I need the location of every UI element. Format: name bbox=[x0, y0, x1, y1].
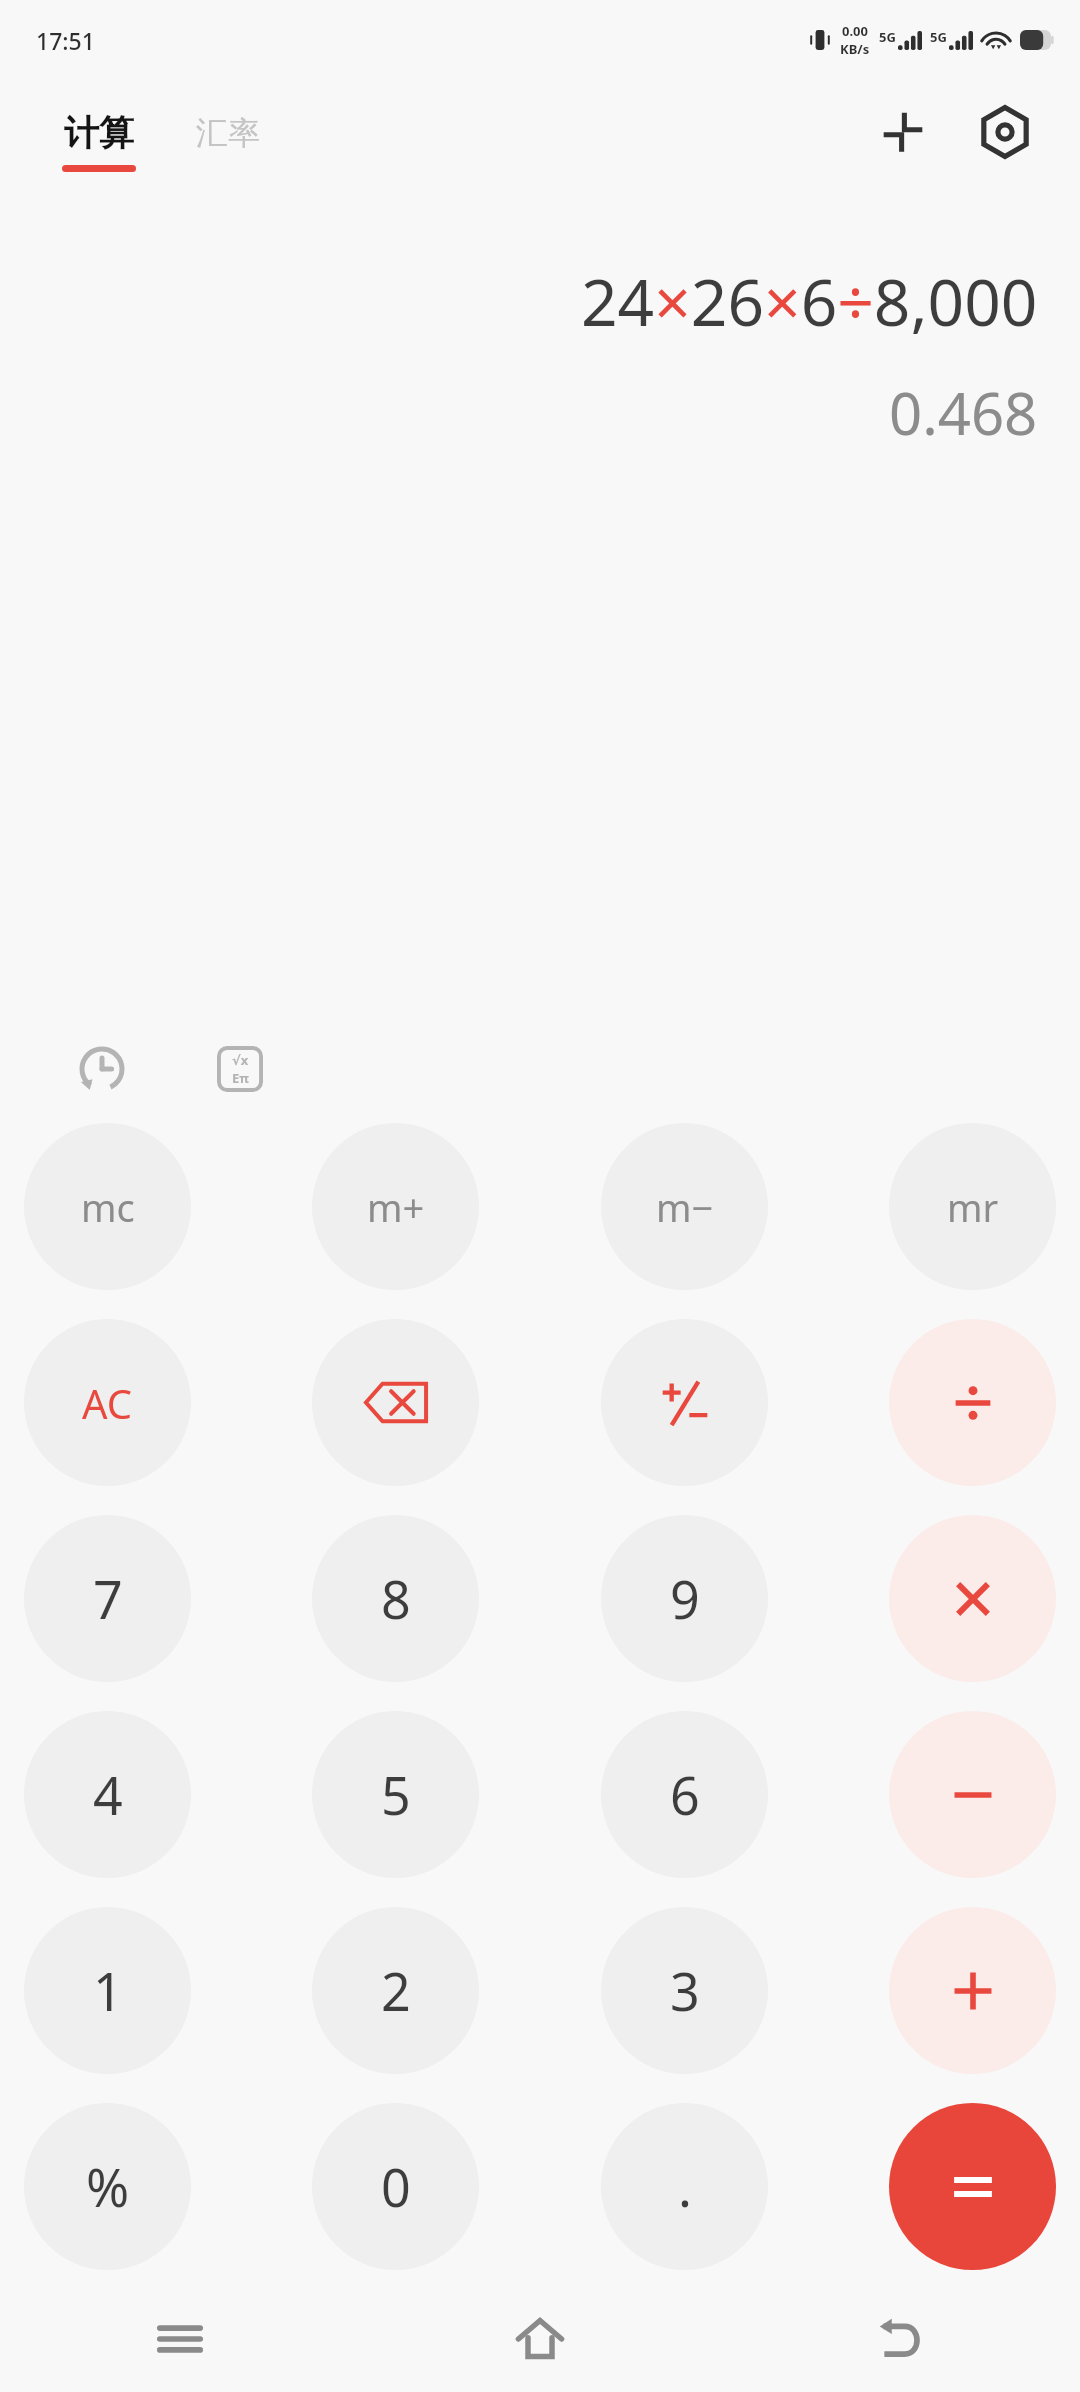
staticText: 汇率 bbox=[196, 113, 260, 153]
staticText: KB/s bbox=[840, 40, 870, 58]
staticText: 计算 bbox=[64, 111, 134, 155]
staticText: Eπ bbox=[232, 1069, 249, 1087]
button[interactable]: 计算 bbox=[62, 111, 136, 172]
button[interactable] bbox=[889, 2103, 1056, 2270]
button[interactable]: 3 bbox=[601, 1907, 768, 2074]
staticText: % bbox=[86, 2151, 130, 2222]
button[interactable]: Recent apps bbox=[0, 2296, 360, 2382]
staticText: 7 bbox=[93, 1563, 123, 1634]
button[interactable]: 8 bbox=[312, 1515, 479, 1682]
button[interactable]: m+ bbox=[312, 1123, 479, 1290]
button[interactable]: 9 bbox=[601, 1515, 768, 1682]
button[interactable]: 6 bbox=[601, 1711, 768, 1878]
button[interactable] bbox=[889, 1515, 1056, 1682]
button[interactable]: History bbox=[70, 1037, 134, 1101]
staticText: m+ bbox=[367, 1181, 425, 1233]
staticText: 0.468 bbox=[889, 373, 1038, 452]
staticText: 9 bbox=[670, 1563, 700, 1634]
button[interactable]: Settings bbox=[972, 99, 1038, 165]
staticText: 4 bbox=[93, 1759, 123, 1830]
button[interactable]: Toggle sign bbox=[601, 1319, 768, 1486]
staticText: √x bbox=[232, 1051, 249, 1069]
staticText: 5G bbox=[930, 28, 947, 46]
button[interactable]: 0 bbox=[312, 2103, 479, 2270]
staticText: 0.00 bbox=[842, 22, 868, 40]
button[interactable]: Scientific mode bbox=[208, 1037, 272, 1101]
button[interactable]: 2 bbox=[312, 1907, 479, 2074]
button[interactable]: AC bbox=[24, 1319, 191, 1486]
button[interactable]: % bbox=[24, 2103, 191, 2270]
button[interactable] bbox=[889, 1319, 1056, 1486]
staticText: 8 bbox=[381, 1563, 411, 1634]
button[interactable]: mc bbox=[24, 1123, 191, 1290]
staticText: 24×26×6÷8,000 bbox=[581, 258, 1038, 345]
button[interactable]: m− bbox=[601, 1123, 768, 1290]
button[interactable]: 5 bbox=[312, 1711, 479, 1878]
button[interactable]: 汇率 bbox=[196, 122, 260, 162]
staticText: m− bbox=[656, 1181, 714, 1233]
button[interactable]: 7 bbox=[24, 1515, 191, 1682]
staticText: 0 bbox=[381, 2151, 411, 2222]
staticText: 17:51 bbox=[36, 25, 95, 56]
staticText: mr bbox=[947, 1181, 999, 1233]
button[interactable] bbox=[889, 1907, 1056, 2074]
staticText: 2 bbox=[381, 1955, 411, 2026]
button[interactable] bbox=[889, 1711, 1056, 1878]
button[interactable]: Back bbox=[720, 2296, 1080, 2382]
staticText: 5G bbox=[879, 28, 896, 46]
button[interactable]: Home bbox=[360, 2296, 720, 2382]
staticText: mc bbox=[81, 1181, 135, 1233]
button[interactable]: 1 bbox=[24, 1907, 191, 2074]
staticText: 6 bbox=[670, 1759, 700, 1830]
button[interactable]: mr bbox=[889, 1123, 1056, 1290]
staticText: 3 bbox=[670, 1955, 700, 2026]
button[interactable]: Backspace bbox=[312, 1319, 479, 1486]
staticText: 5 bbox=[381, 1759, 411, 1830]
button[interactable]: 4 bbox=[24, 1711, 191, 1878]
staticText: 1 bbox=[93, 1955, 123, 2026]
button[interactable]: Collapse bbox=[870, 99, 936, 165]
staticText: AC bbox=[82, 1376, 133, 1430]
button[interactable]: . bbox=[601, 2103, 768, 2270]
staticText: . bbox=[678, 2151, 692, 2222]
